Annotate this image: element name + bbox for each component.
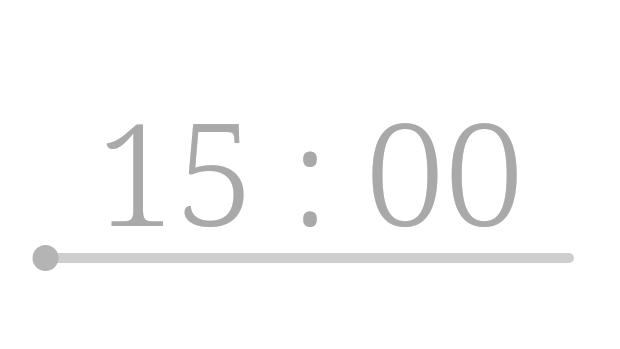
- button[interactable]: Timer duration slider: [0, 236, 620, 280]
- button[interactable]: 15 : 00: [0, 74, 620, 267]
